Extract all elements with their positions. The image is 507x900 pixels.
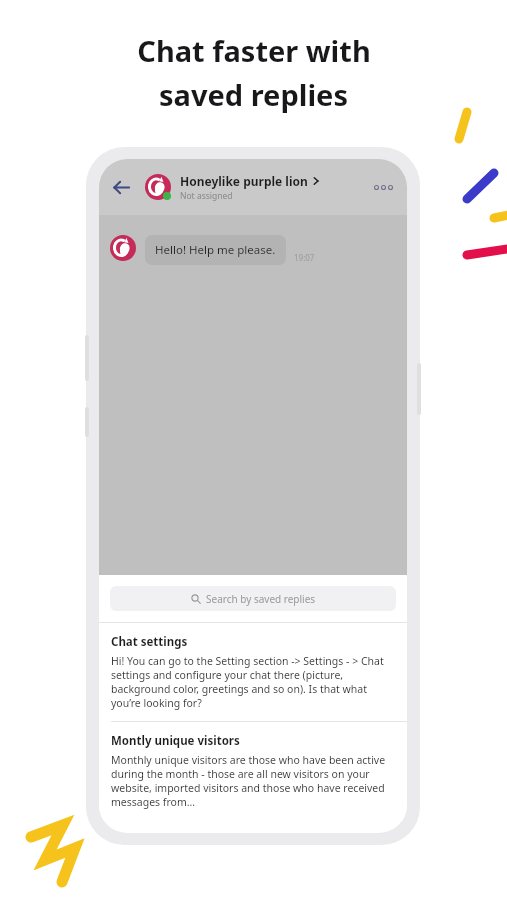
button[interactable]: Back: [107, 173, 135, 201]
staticText: Search by saved replies: [206, 592, 316, 606]
button[interactable]: Honeylike purple lion: [180, 173, 368, 202]
staticText: Honeylike purple lion: [180, 173, 308, 189]
staticText: Not assigned: [180, 190, 233, 202]
staticText: Chat settings: [111, 634, 188, 650]
button[interactable]: Chat settings: [99, 623, 407, 721]
button[interactable]: Montly unique visitors: [99, 722, 407, 820]
button[interactable]: Search by saved replies: [110, 586, 396, 611]
staticText: Monthly unique visitors are those who ha…: [111, 753, 395, 809]
staticText: Hello! Help me please.: [155, 242, 276, 258]
staticText: 19:07: [294, 252, 315, 263]
staticText: saved replies: [159, 75, 348, 114]
staticText: Montly unique visitors: [111, 733, 240, 749]
staticText: Chat faster with: [137, 31, 371, 70]
button[interactable]: Hello! Help me please.: [110, 235, 315, 265]
button[interactable]: More options: [368, 177, 399, 198]
staticText: Hi! You can go to the Setting section ->…: [111, 654, 395, 710]
